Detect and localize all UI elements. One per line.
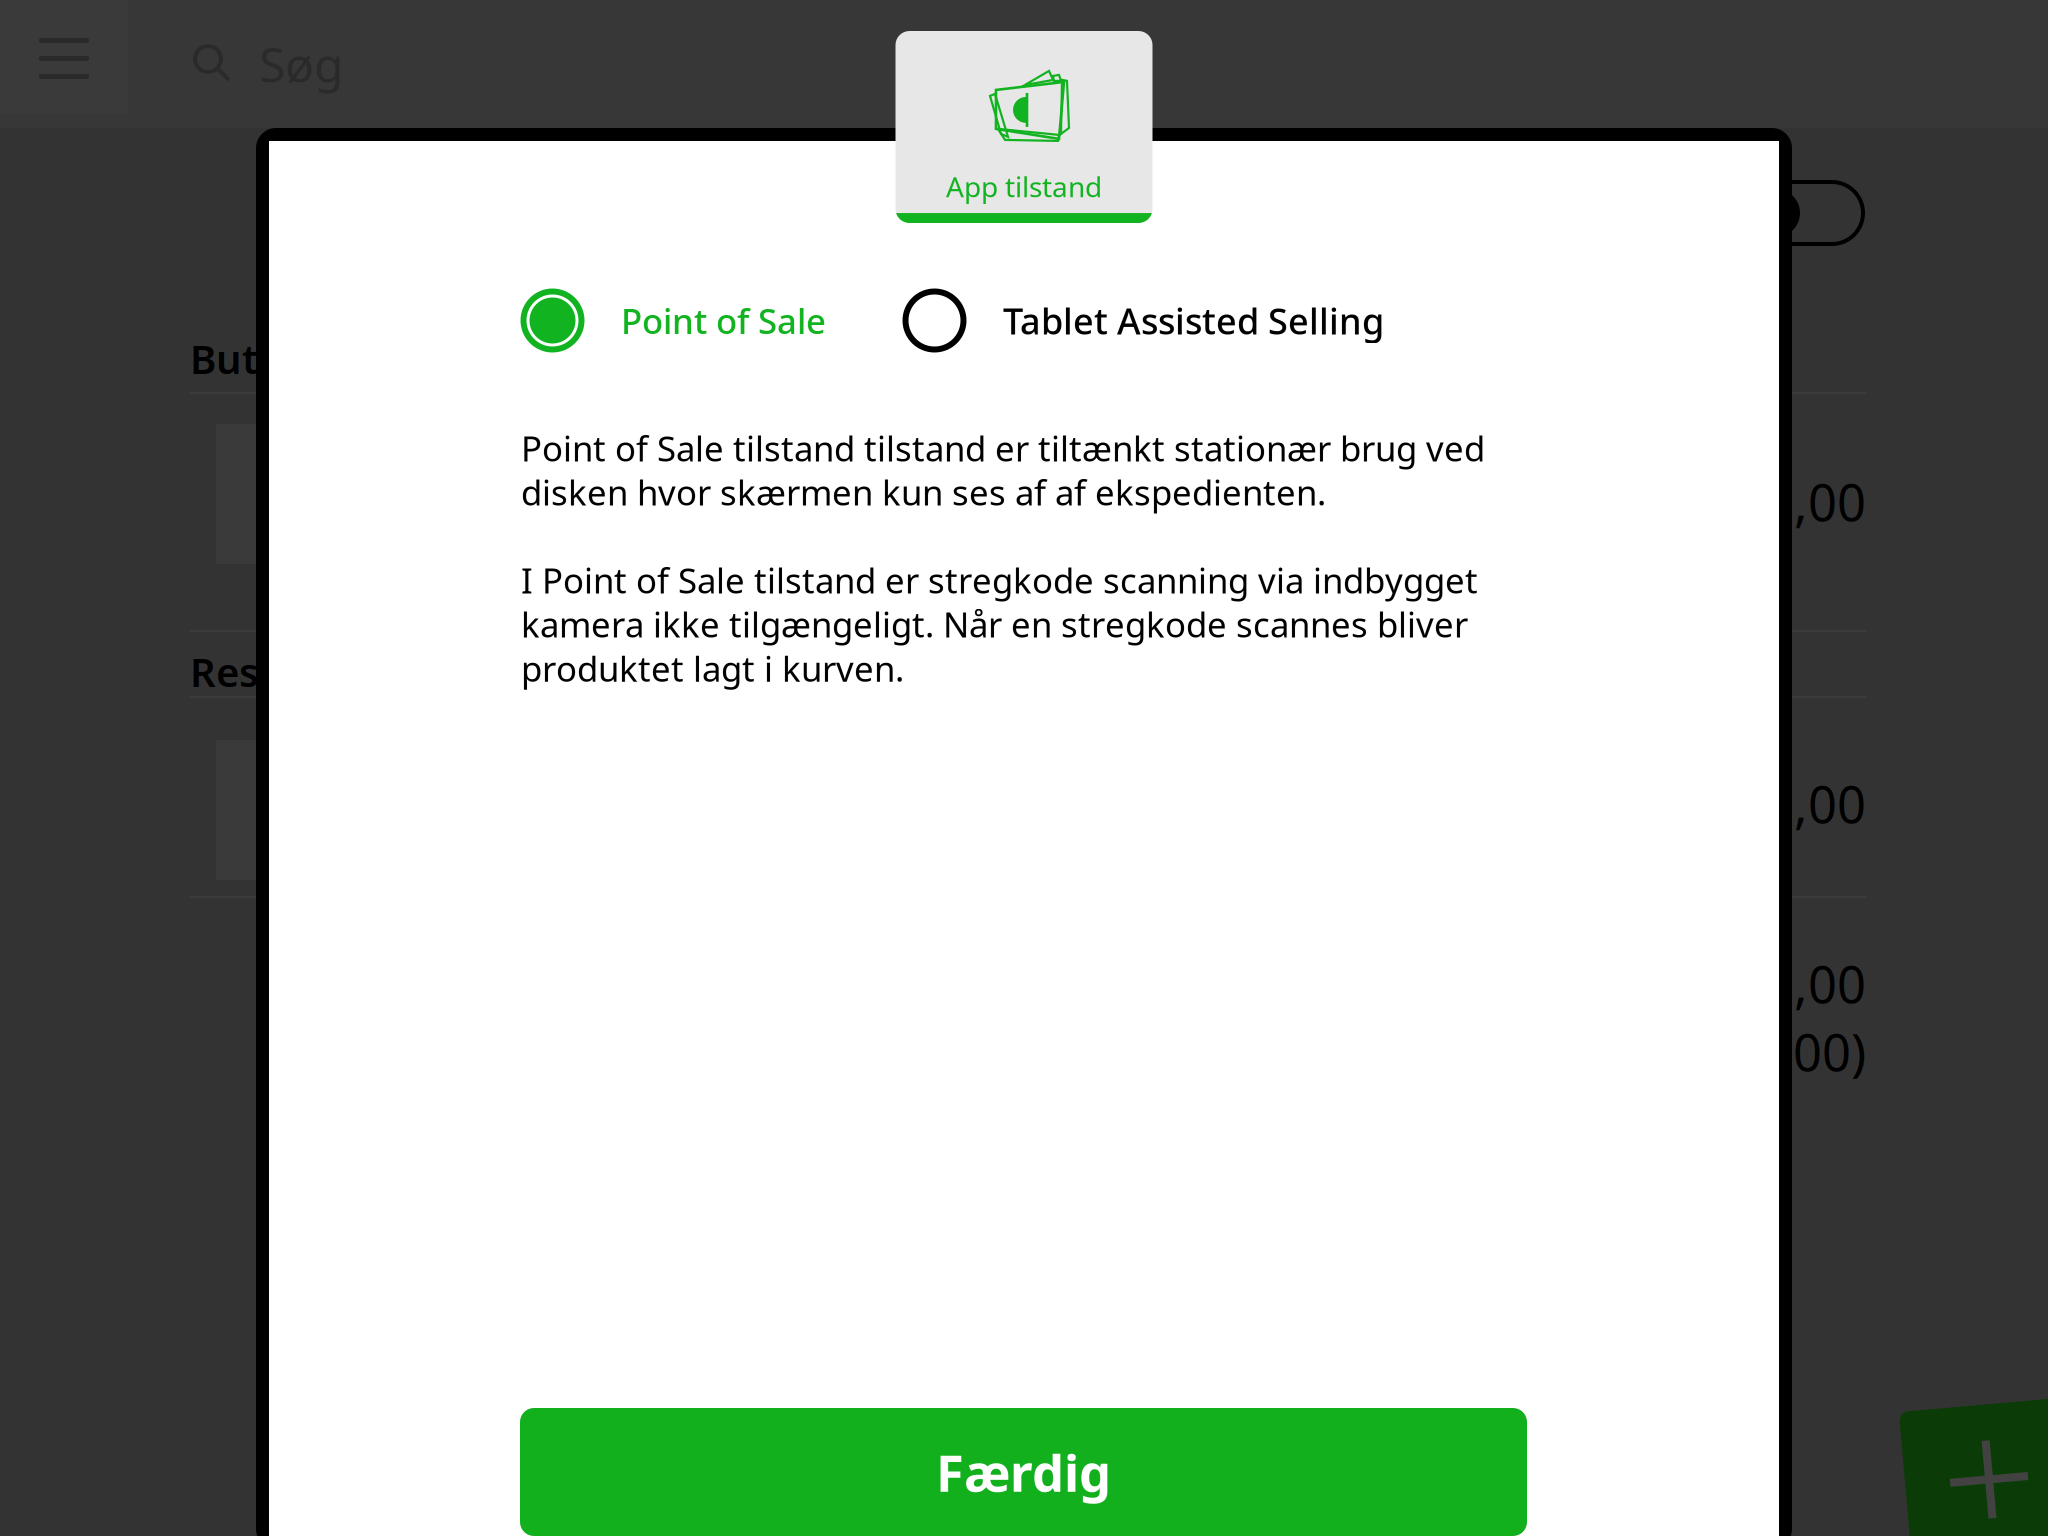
button[interactable]: Point of Sale bbox=[520, 288, 826, 353]
button[interactable]: App tilstand bbox=[895, 31, 1152, 223]
staticText: Butikker bbox=[190, 332, 357, 385]
staticText: Point of Sale tilstand tilstand er tiltæ… bbox=[521, 425, 1485, 691]
staticText: 1.000,00 bbox=[1664, 950, 1866, 1017]
staticText: Tablet Assisted Selling bbox=[1003, 297, 1384, 344]
button[interactable]: Tablet Assisted Selling bbox=[902, 288, 1384, 353]
staticText: 1.000,00 bbox=[1664, 770, 1866, 837]
staticText: Point of Sale bbox=[621, 297, 826, 343]
staticText: Reservationer bbox=[190, 645, 462, 698]
staticText: 1.000,00 bbox=[1664, 468, 1866, 535]
button[interactable]: Menu bbox=[0, 0, 128, 114]
button[interactable]: Færdig bbox=[520, 1408, 1527, 1536]
staticText: App tilstand bbox=[946, 168, 1102, 205]
staticText: Færdig bbox=[936, 1438, 1111, 1506]
staticText: (1.000,00) bbox=[1634, 1018, 1866, 1085]
staticText: Søg bbox=[259, 32, 344, 96]
